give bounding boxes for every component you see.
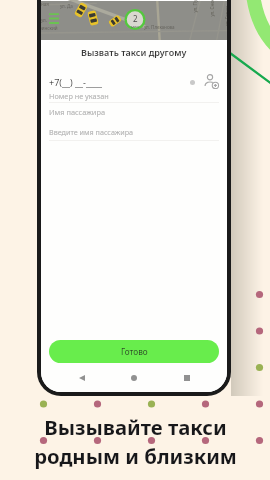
button[interactable]: Обзор [175, 366, 199, 390]
staticText: ул. [41, 17, 47, 23]
staticText: ул. Да [60, 3, 73, 9]
staticText: Вызывайте такси родным и близким [34, 413, 237, 470]
staticText: Номер не указан [49, 91, 109, 101]
staticText: ул. Горки [224, 6, 227, 26]
staticText: ул. Плеханова [144, 24, 175, 30]
button[interactable]: Добавить контакт [203, 73, 220, 90]
button[interactable]: Назад [70, 366, 94, 390]
staticText: Готово [121, 346, 148, 357]
staticText: мин [131, 24, 140, 29]
button[interactable]: Готово [49, 340, 219, 363]
staticText: ринский [41, 25, 58, 31]
staticText: ул. Пу [191, 0, 197, 12]
button[interactable]: Домой [122, 366, 146, 390]
staticText: Вызвать такси другому [81, 46, 187, 58]
staticText: 2 [133, 13, 138, 24]
staticText: Введите имя пассажира [49, 127, 134, 137]
button[interactable]: Очистить номер [185, 75, 199, 89]
staticText: ул. Снеж [208, 0, 214, 16]
staticText: Имя пассажира [49, 107, 106, 117]
staticText: +7(__) __-____ [49, 76, 102, 88]
staticText: ная [41, 1, 49, 7]
